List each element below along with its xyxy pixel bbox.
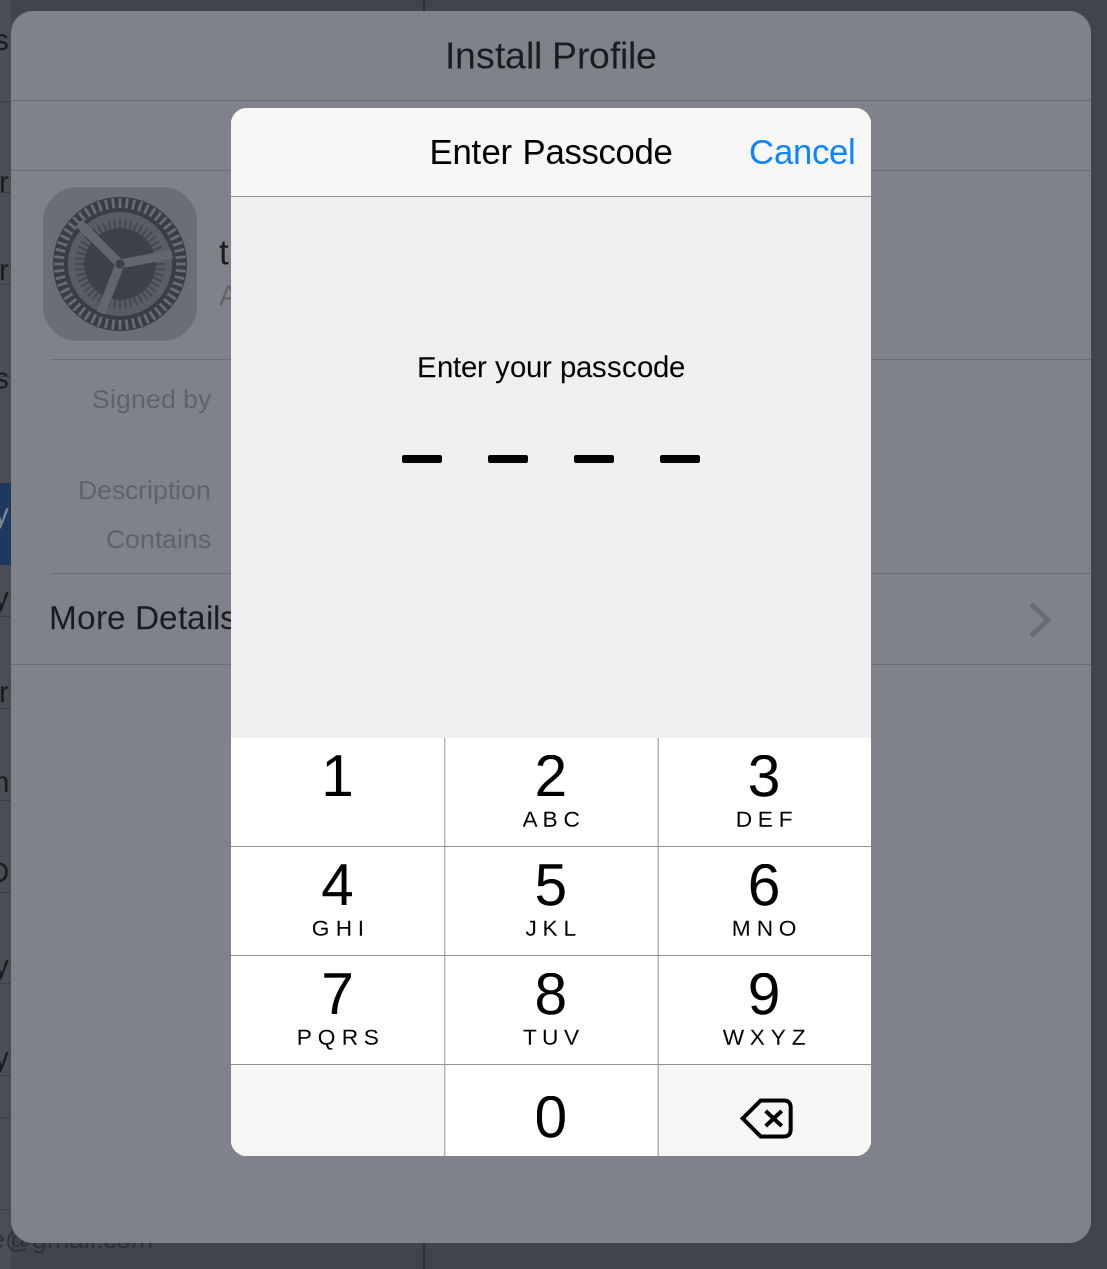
staticText: Display — [0, 582, 9, 614]
staticText: M N O — [732, 915, 797, 941]
button[interactable]: More Details — [11, 574, 1091, 666]
staticText: W X Y Z — [723, 1024, 806, 1050]
staticText: Cancel — [749, 133, 856, 171]
staticText: Wallpaper — [0, 676, 9, 708]
staticText: 3 — [748, 743, 781, 809]
staticText: Touch ID — [0, 856, 9, 888]
button[interactable]: 2 — [444, 738, 658, 846]
staticText: A B C — [522, 806, 579, 832]
staticText: Privacy — [0, 1042, 9, 1074]
staticText: 5 — [534, 852, 567, 918]
staticText: Description — [78, 475, 211, 505]
button[interactable]: 0 — [444, 1065, 658, 1156]
staticText: 8 — [534, 961, 567, 1027]
staticText: 1 — [321, 743, 354, 809]
button[interactable]: 1 — [231, 738, 444, 846]
staticText: Wallpaper — [0, 166, 9, 198]
staticText: t — [219, 233, 229, 272]
staticText: 2 — [534, 743, 567, 809]
staticText: Battery — [0, 950, 9, 982]
button[interactable]: 6 — [658, 847, 871, 955]
staticText: Siri & Search — [0, 766, 9, 798]
button[interactable]: 7 — [231, 956, 444, 1064]
staticText: T U V — [523, 1024, 579, 1050]
staticText: Install Profile — [445, 35, 657, 76]
staticText: J K L — [525, 915, 576, 941]
staticText: Contains — [106, 524, 211, 554]
staticText: 6 — [748, 852, 781, 918]
staticText: Control Center — [0, 254, 9, 286]
staticText: 9 — [748, 961, 781, 1027]
staticText: P Q R S — [297, 1024, 379, 1050]
button[interactable]: 8 — [444, 956, 658, 1064]
staticText: 7 — [321, 961, 354, 1027]
staticText: 4 — [321, 852, 354, 918]
button[interactable]: 5 — [444, 847, 658, 955]
staticText: Display & Brightness — [0, 329, 9, 395]
staticText: Enter Passcode — [429, 133, 672, 171]
staticText: D E F — [736, 806, 793, 832]
staticText: Signed by — [92, 384, 211, 414]
button[interactable]: Delete — [658, 1065, 871, 1156]
staticText: More Details — [49, 599, 237, 636]
staticText: Privacy — [0, 498, 9, 530]
staticText: e@gmail.com — [0, 1224, 153, 1254]
button[interactable]: 3 — [658, 738, 871, 846]
button[interactable]: 4 — [231, 847, 444, 955]
button[interactable]: 9 — [658, 956, 871, 1064]
staticText: 0 — [534, 1084, 567, 1150]
button[interactable]: Cancel — [656, 108, 871, 196]
staticText: Enter your passcode — [417, 351, 685, 383]
staticText: A — [219, 279, 239, 312]
staticText: Accounts — [0, 24, 9, 56]
staticText: G H I — [312, 915, 364, 941]
